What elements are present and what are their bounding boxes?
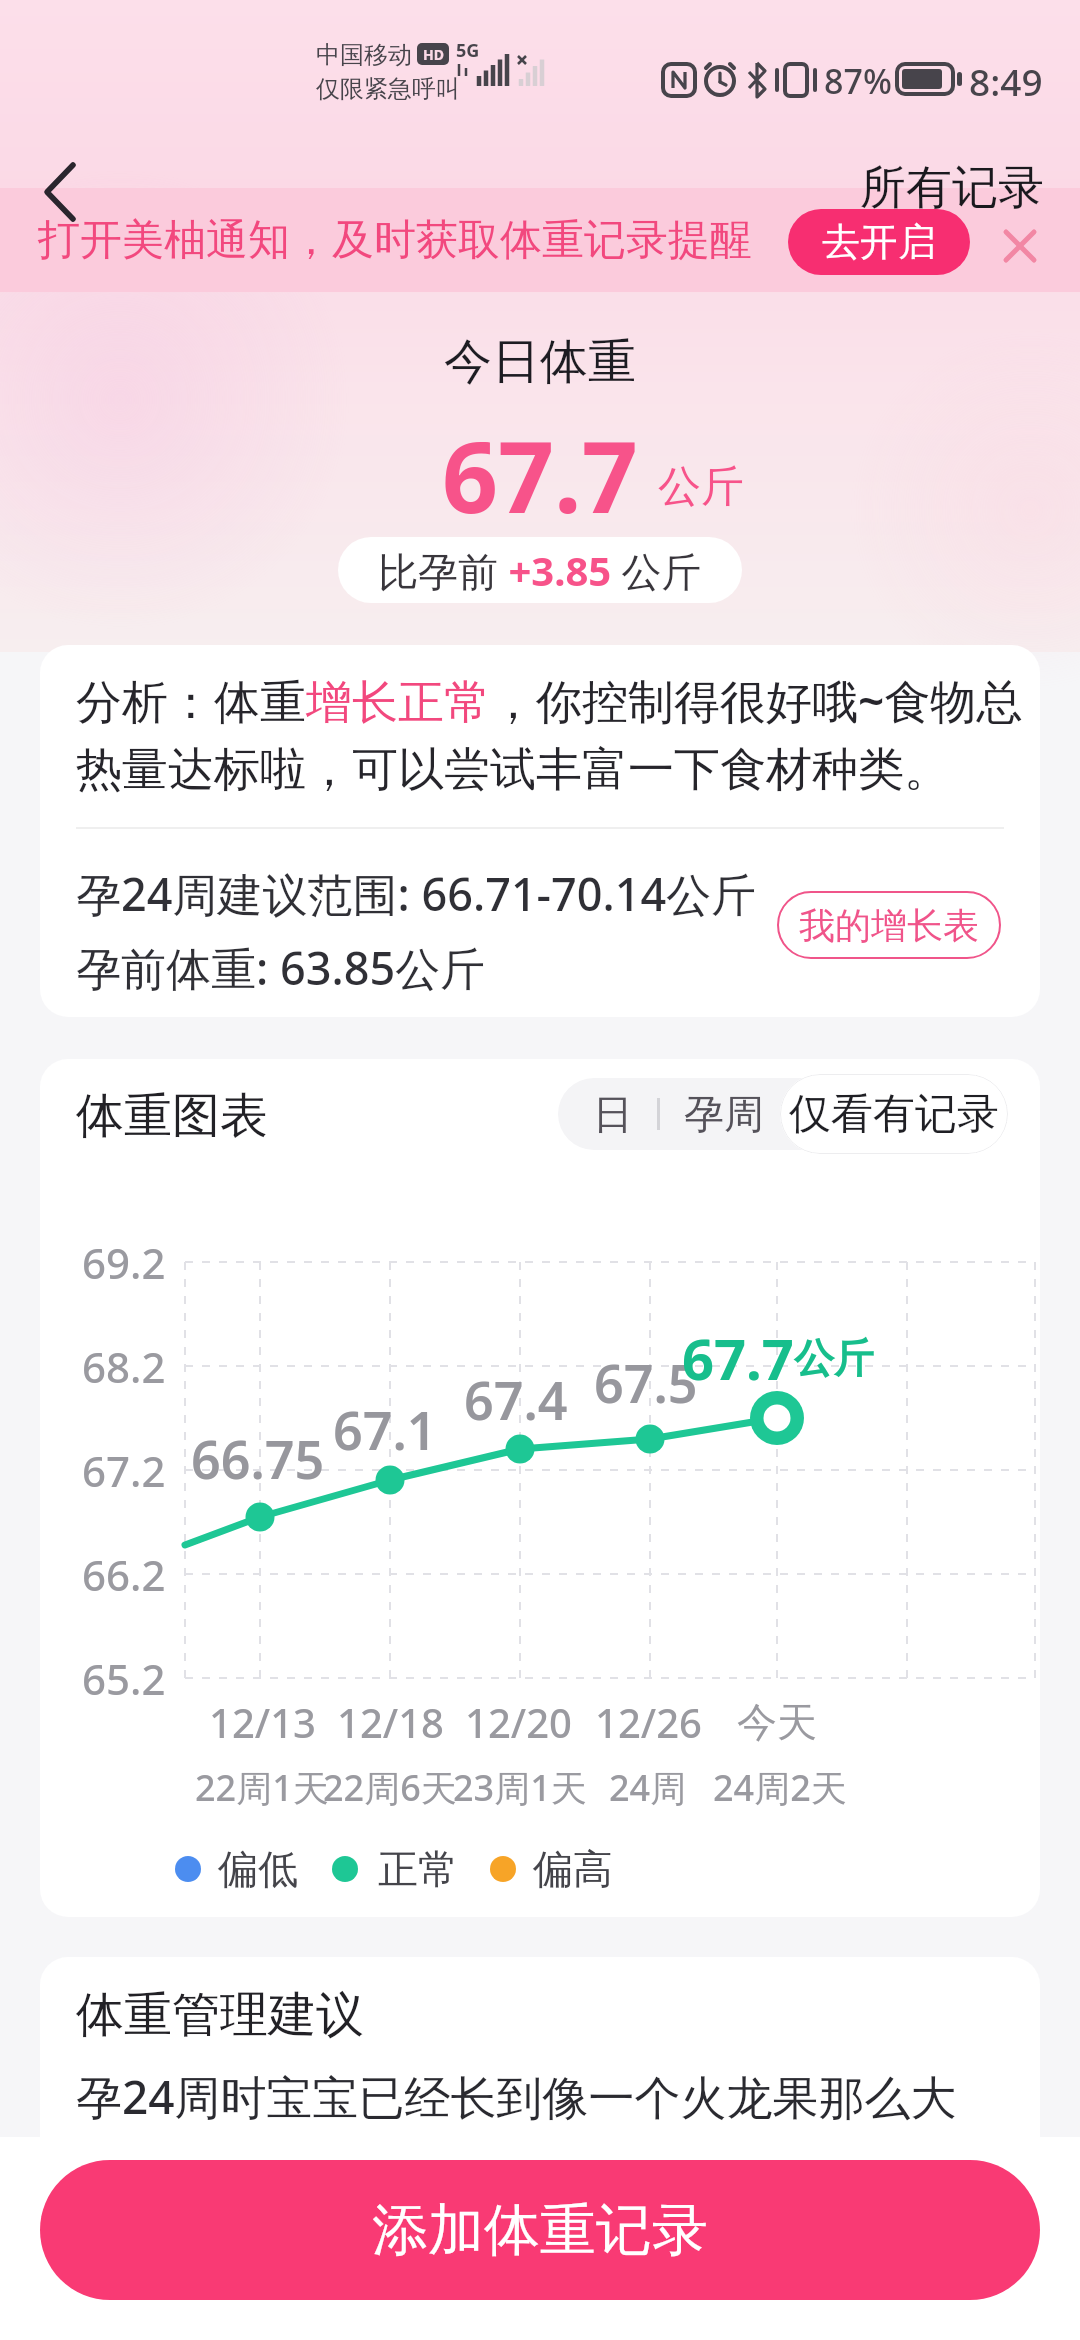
button[interactable] (1000, 226, 1040, 266)
staticText: 打开美柚通知，及时获取体重记录提醒 (38, 214, 752, 267)
staticText: 公斤 (794, 1333, 874, 1383)
staticText: 24周2天 (713, 1763, 847, 1812)
button[interactable]: 日 (558, 1078, 668, 1150)
button[interactable]: 添加体重记录 (40, 2160, 1040, 2300)
staticText: 仅限紧急呼叫 (316, 74, 460, 102)
staticText: 偏高 (533, 1844, 613, 1894)
staticText: 孕24周建议范围: 66.71-70.14公斤 (76, 863, 757, 924)
staticText: 所有记录 (860, 159, 1044, 217)
button[interactable]: 仅看有记录 (780, 1074, 1008, 1154)
staticText: 今天 (737, 1697, 817, 1747)
staticText: 24周 (609, 1763, 687, 1812)
button[interactable] (40, 160, 84, 224)
staticText: 12/13 (209, 1695, 316, 1749)
staticText: 去开启 (822, 218, 936, 266)
staticText: 67.7 (442, 408, 638, 541)
staticText: 67.5 (594, 1347, 698, 1418)
staticText: 68.2 (82, 1338, 166, 1395)
staticText: HD (423, 45, 444, 64)
staticText: 22周1天 (195, 1763, 329, 1812)
button[interactable]: 所有记录 (840, 158, 1044, 218)
staticText: 仅看有记录 (789, 1088, 999, 1141)
staticText: 87% (824, 58, 892, 102)
staticText: 公斤 (658, 460, 744, 514)
staticText: 12/18 (337, 1695, 444, 1749)
staticText: 67.2 (82, 1442, 166, 1499)
staticText: 67.4 (464, 1364, 568, 1435)
staticText: 我的增长表 (799, 903, 979, 948)
button[interactable]: 孕周 (664, 1078, 784, 1150)
staticText: 添加体重记录 (372, 2195, 708, 2266)
staticText: 体重图表 (76, 1086, 268, 1146)
staticText: 今日体重 (444, 332, 636, 392)
button[interactable]: 我的增长表 (777, 891, 1001, 959)
staticText: 5G (456, 38, 480, 60)
staticText: 67.7 (682, 1320, 794, 1396)
button[interactable]: 去开启 (788, 209, 970, 275)
staticText: 66.2 (82, 1546, 166, 1603)
staticText: 12/26 (595, 1695, 702, 1749)
staticText: 69.2 (82, 1234, 166, 1291)
staticText: 孕前体重: 63.85公斤 (76, 937, 486, 998)
staticText: 比孕前 +3.85 公斤 (378, 543, 702, 598)
staticText: 22周6天 (323, 1763, 457, 1812)
staticText: 67.1 (333, 1394, 437, 1465)
staticText: 分析：体重增长正常，你控制得很好哦~食物总 热量达标啦，可以尝试丰富一下食材种类… (76, 669, 1023, 799)
staticText: 体重管理建议 (76, 1985, 364, 2045)
staticText: 正常 (378, 1844, 458, 1894)
staticText: 孕周 (684, 1089, 764, 1139)
staticText: 孕24周时宝宝已经长到像一个火龙果那么大 (76, 2065, 957, 2128)
staticText: 23周1天 (453, 1763, 587, 1812)
staticText: 中国移动 (316, 40, 412, 68)
staticText: 日 (593, 1089, 633, 1139)
staticText: 65.2 (82, 1650, 166, 1707)
staticText: 66.75 (191, 1423, 325, 1494)
staticText: 12/20 (465, 1695, 572, 1749)
staticText: 8:49 (969, 56, 1043, 104)
staticText: 偏低 (218, 1844, 298, 1894)
